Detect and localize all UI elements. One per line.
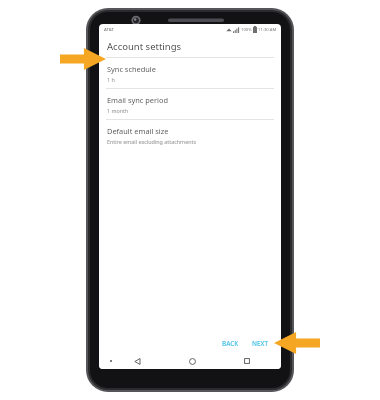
staticText: Sync schedule xyxy=(107,64,156,74)
staticText: 1 h xyxy=(107,76,115,83)
staticText: BACK xyxy=(222,339,239,348)
other: Callout arrow pointing left xyxy=(274,332,320,354)
staticText: Default email size xyxy=(107,126,169,136)
button[interactable]: Home xyxy=(184,353,200,369)
staticText: AT&T xyxy=(104,27,114,33)
button[interactable]: BACK xyxy=(217,336,244,351)
staticText: Email sync period xyxy=(107,95,168,105)
staticText: Entire email excluding attachments xyxy=(107,138,197,145)
button[interactable]: NEXT xyxy=(247,336,274,351)
staticText: 1 month xyxy=(107,107,129,114)
button[interactable]: Sync schedule xyxy=(99,58,281,89)
staticText: 11:30 AM xyxy=(258,27,277,33)
other: Callout arrow pointing right xyxy=(60,48,106,70)
staticText: Account settings xyxy=(107,40,182,53)
staticText: NEXT xyxy=(252,339,269,348)
button[interactable]: Recent apps xyxy=(239,353,255,369)
staticText: 100% xyxy=(241,27,252,33)
button[interactable]: Email sync period xyxy=(99,89,281,120)
button[interactable]: Default email size xyxy=(99,120,281,150)
button[interactable]: Back xyxy=(129,353,145,369)
